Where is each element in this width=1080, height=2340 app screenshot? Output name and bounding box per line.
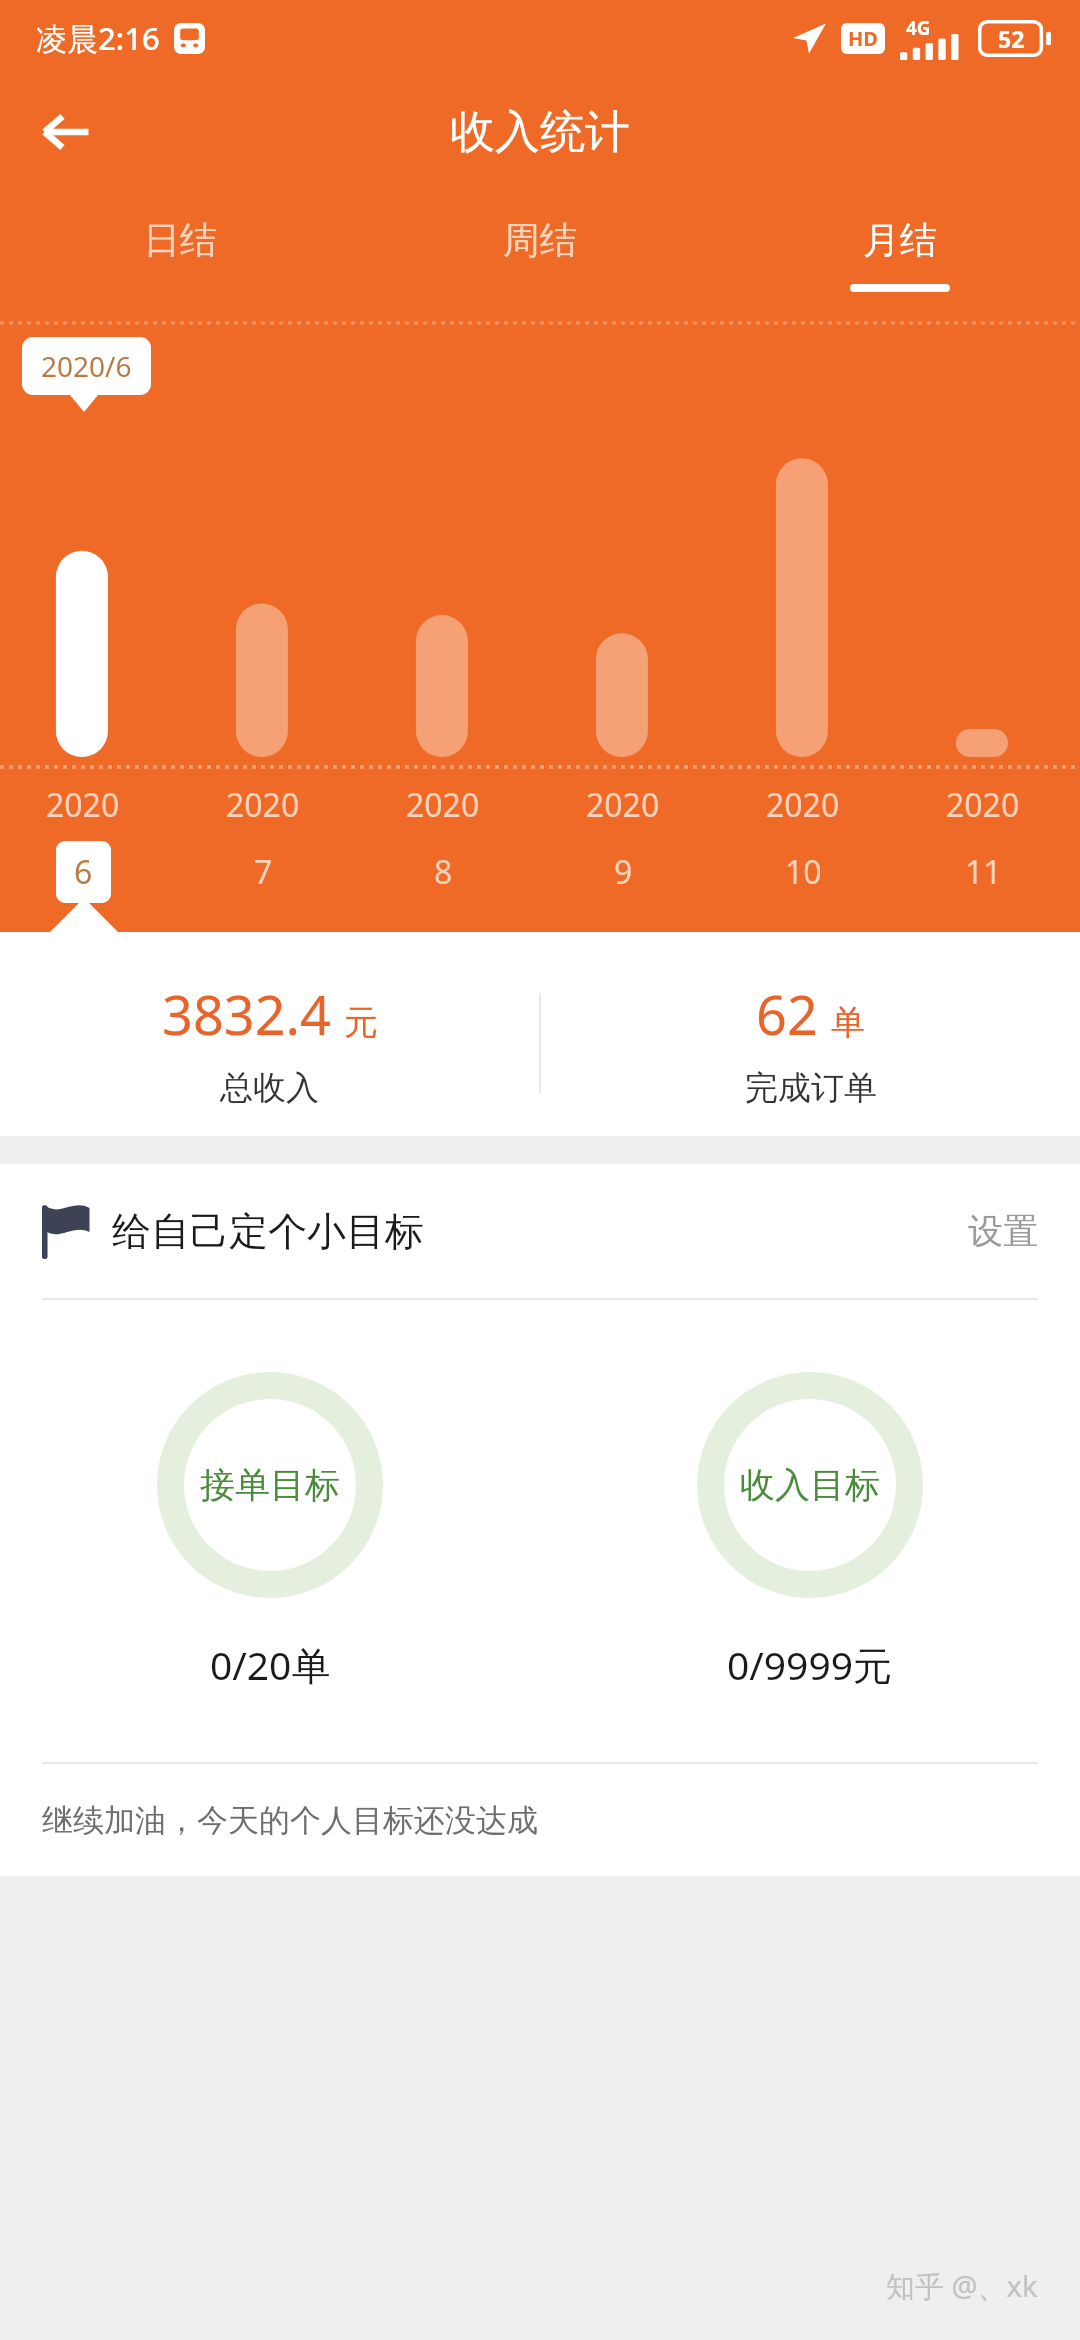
staticText: 0/9999元 [727, 1638, 893, 1691]
staticText: 6 [74, 850, 93, 894]
button[interactable]: 2020 [180, 783, 360, 903]
button[interactable]: 收入目标 [540, 1372, 1080, 1691]
button[interactable]: 设置 [926, 1187, 1080, 1275]
staticText: HD [848, 25, 878, 52]
button[interactable]: 2020 [900, 783, 1080, 903]
staticText: 11 [965, 850, 1002, 894]
staticText: 给自己定个小目标 [112, 1207, 424, 1256]
staticText: 8 [434, 850, 453, 894]
staticText: 完成订单 [745, 1067, 877, 1109]
button[interactable]: 接单目标 [0, 1372, 540, 1691]
staticText: 2020 [46, 783, 120, 827]
staticText: 设置 [968, 1209, 1038, 1253]
staticText: 10 [785, 850, 822, 894]
staticText: 单 [831, 1001, 865, 1044]
staticText: 4G [906, 15, 931, 41]
staticText: 2020 [226, 783, 300, 827]
staticText: 元 [344, 1001, 378, 1044]
staticText: 0/20单 [210, 1638, 331, 1691]
staticText: 2020 [946, 783, 1020, 827]
staticText: 继续加油，今天的个人目标还没达成 [42, 1801, 538, 1840]
staticText: 凌晨2:16 [36, 17, 160, 59]
staticText: 2020 [766, 783, 840, 827]
staticText: 收入统计 [450, 104, 630, 161]
button[interactable]: 月结 [720, 188, 1080, 321]
staticText: 52 [998, 23, 1025, 54]
staticText: 接单目标 [200, 1463, 340, 1507]
staticText: 收入目标 [740, 1463, 880, 1507]
button[interactable]: 日结 [0, 188, 360, 321]
staticText: 2020 [406, 783, 480, 827]
staticText: 月结 [863, 217, 937, 264]
staticText: 周结 [503, 217, 577, 264]
staticText: 2020 [586, 783, 660, 827]
button[interactable]: 2020 [0, 783, 180, 903]
button[interactable]: 2020 [540, 783, 720, 903]
staticText: 2020/6 [41, 347, 132, 385]
button[interactable]: 返回 [24, 90, 108, 174]
button[interactable]: 周结 [360, 188, 720, 321]
staticText: 知乎 @、xk [886, 2266, 1038, 2306]
button[interactable]: 2020 [360, 783, 540, 903]
staticText: 9 [614, 850, 633, 894]
staticText: 62 [756, 977, 818, 1051]
staticText: 3832.4 [162, 977, 331, 1051]
staticText: 日结 [143, 217, 217, 264]
staticText: 7 [254, 850, 273, 894]
staticText: 总收入 [220, 1067, 319, 1109]
button[interactable]: 2020 [720, 783, 900, 903]
